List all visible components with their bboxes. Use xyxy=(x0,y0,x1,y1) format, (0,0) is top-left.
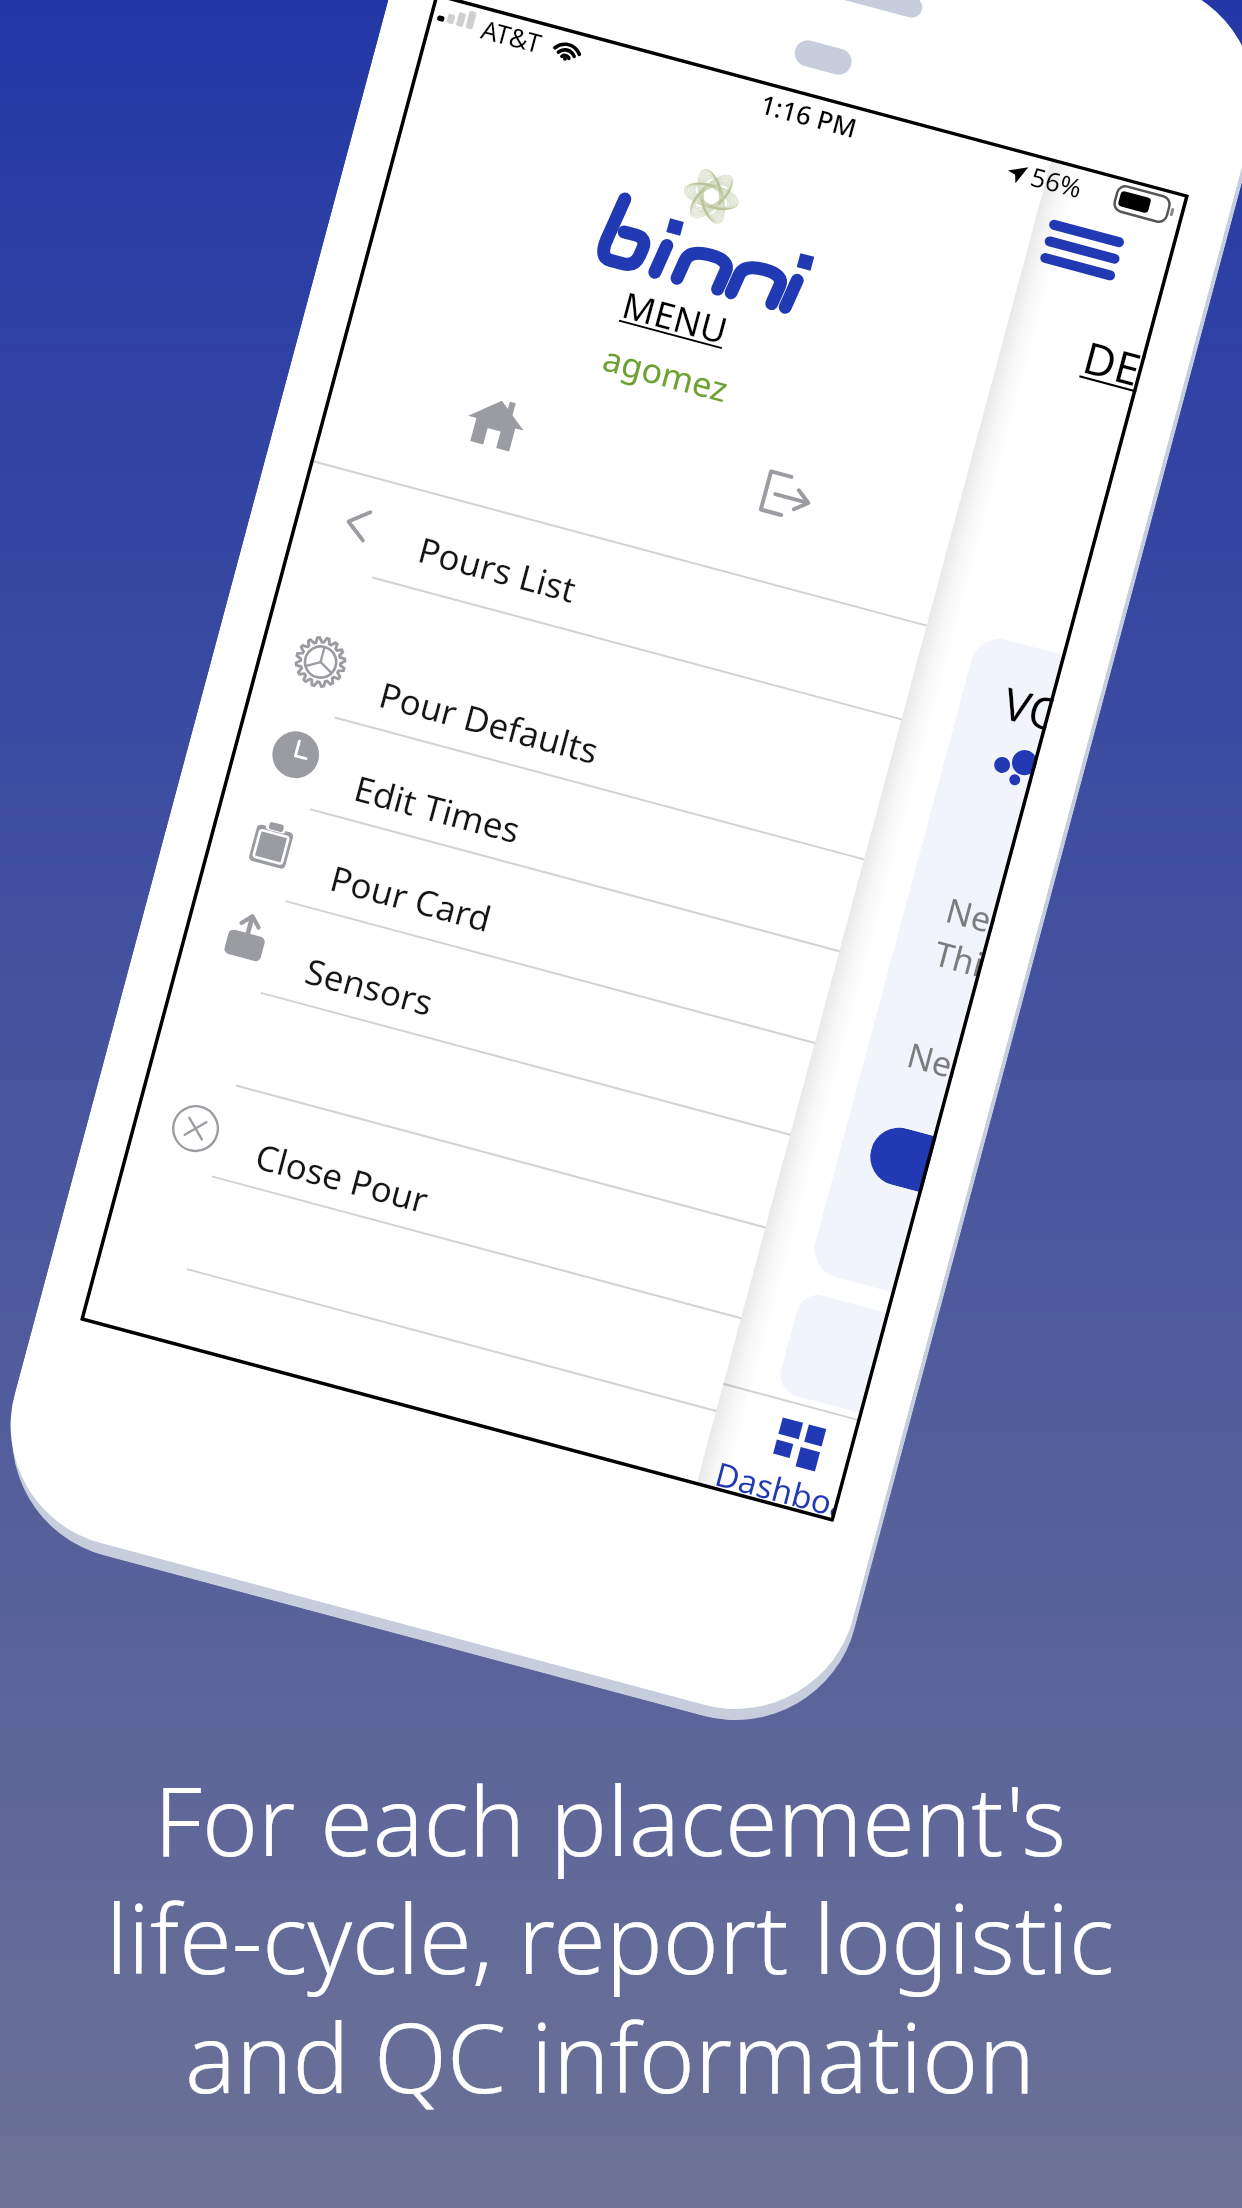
button[interactable]: Open menu xyxy=(1034,202,1130,298)
button[interactable]: Pour Card xyxy=(197,796,837,1048)
staticText: Edit Times xyxy=(349,764,526,854)
staticText: 1:16 PM xyxy=(757,86,862,145)
staticText: VOLUME xyxy=(997,672,1058,743)
staticText: Close Pour xyxy=(250,1132,434,1224)
button[interactable]: Edit Times xyxy=(222,706,861,956)
staticText: AT&T xyxy=(478,11,546,60)
staticText: Next xyxy=(902,1031,961,1088)
button[interactable] xyxy=(864,1121,937,1193)
button[interactable]: Pour Defaults xyxy=(246,612,886,864)
button[interactable]: Dashboard xyxy=(686,1384,860,1522)
button[interactable]: Home xyxy=(459,383,534,458)
button[interactable]: Pours List xyxy=(284,467,925,724)
button[interactable]: Log out xyxy=(739,457,818,530)
button[interactable]: Sensors xyxy=(173,888,812,1139)
staticText: MENU xyxy=(617,280,733,355)
staticText: For each placement's life-cycle, report … xyxy=(0,1754,1231,2121)
staticText: DETAILS xyxy=(1077,326,1150,400)
staticText: Needed This Pour xyxy=(930,886,1000,986)
staticText: 56% xyxy=(1027,158,1087,205)
button[interactable]: Close Pour xyxy=(123,1074,762,1323)
staticText: Dashboard xyxy=(712,1451,844,1522)
staticText: Pour Card xyxy=(325,854,497,943)
staticText: Sensors xyxy=(300,947,438,1027)
staticText: agomez xyxy=(598,335,734,412)
staticText: Pours List xyxy=(413,525,582,614)
staticText: Pour Defaults xyxy=(374,670,604,775)
